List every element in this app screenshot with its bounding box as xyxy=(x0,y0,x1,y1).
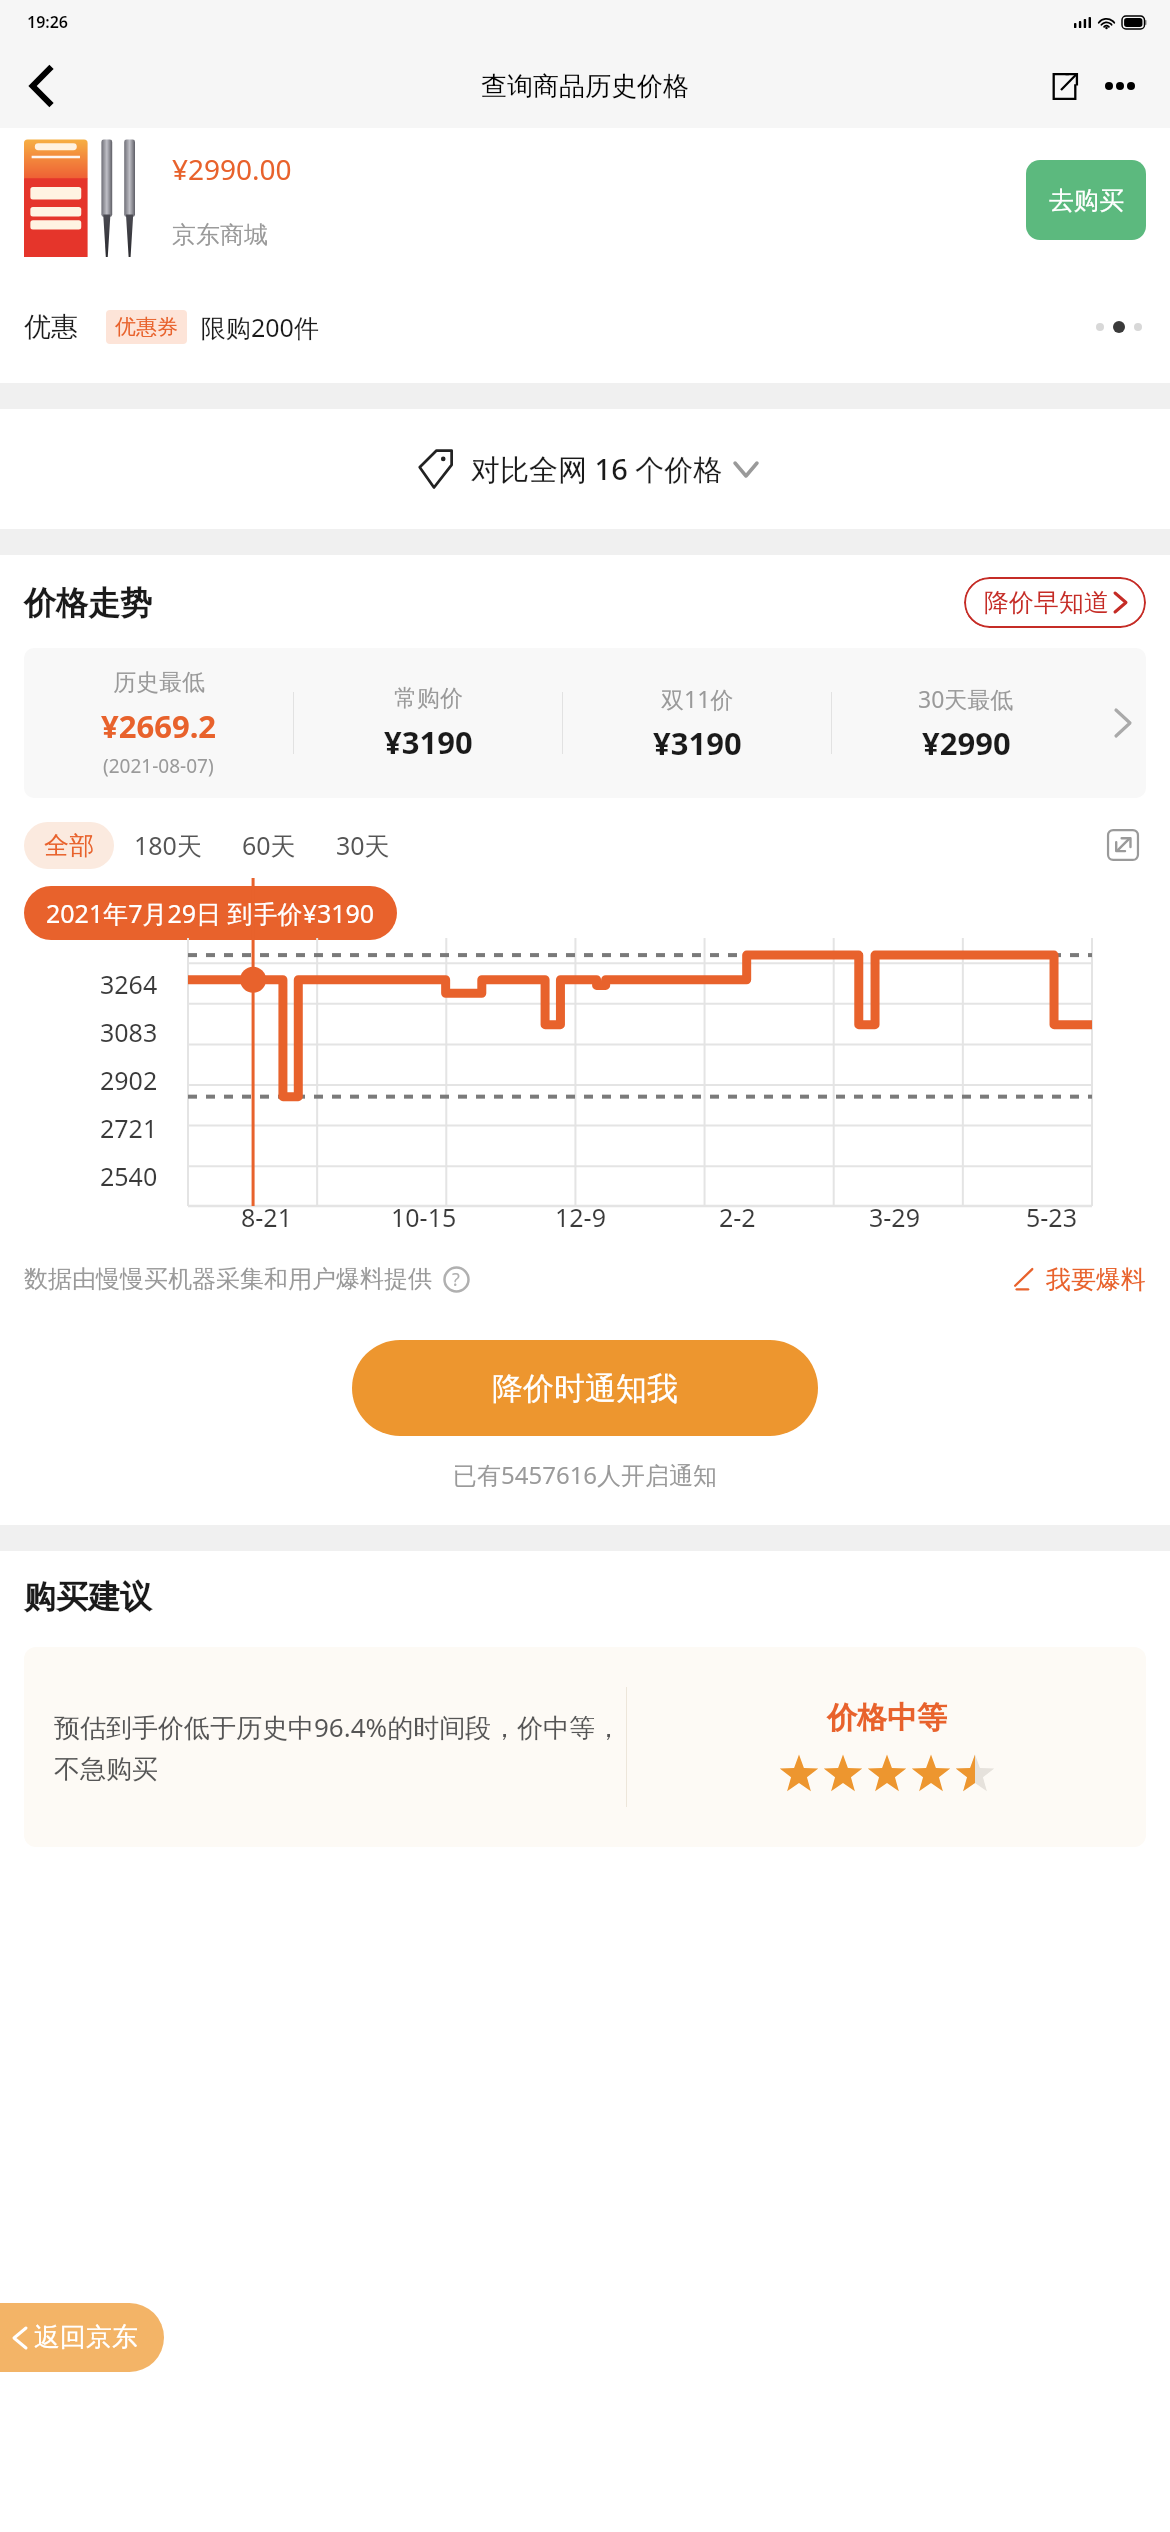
staticText: 查询商品历史价格 xyxy=(481,70,689,103)
button[interactable]: More options xyxy=(1094,60,1146,112)
button[interactable]: 全部 xyxy=(24,822,114,869)
staticText: 返回京东 xyxy=(34,2321,138,2354)
staticText: 30天最低 xyxy=(918,683,1014,714)
staticText: 2021年7月29日 到手价¥3190 xyxy=(46,896,375,930)
staticText: 2721 xyxy=(100,1111,158,1145)
staticText: 常购价 xyxy=(394,684,463,713)
staticText: 去购买 xyxy=(1049,185,1124,216)
staticText: ¥3190 xyxy=(384,721,473,763)
staticText: 180天 xyxy=(134,828,202,862)
staticText: 5-23 xyxy=(1026,1200,1077,1234)
button[interactable]: Fullscreen chart xyxy=(1100,822,1146,868)
button[interactable]: 降价早知道 xyxy=(964,577,1146,628)
staticText: 对比全网 16 个价格 xyxy=(471,449,723,489)
staticText: 3-29 xyxy=(869,1200,920,1234)
staticText: 3264 xyxy=(100,967,158,1001)
staticText: 10-15 xyxy=(391,1200,457,1234)
button[interactable]: ¥2990.00 xyxy=(0,128,1170,271)
staticText: 预估到手价低于历史中96.4%的时间段，价中等，不急购买 xyxy=(54,1709,626,1786)
staticText: 30天 xyxy=(336,828,390,862)
button[interactable]: 对比全网 16 个价格 xyxy=(0,409,1170,529)
button[interactable]: 返回京东 xyxy=(0,2303,164,2372)
staticText: 12-9 xyxy=(555,1200,606,1234)
staticText: 我要爆料 xyxy=(1046,1264,1146,1295)
staticText: 降价早知道 xyxy=(984,587,1109,618)
staticText: 8-21 xyxy=(241,1200,292,1234)
button[interactable]: 降价时通知我 xyxy=(352,1340,818,1436)
staticText: 优惠券 xyxy=(115,314,178,340)
staticText: 19:26 xyxy=(27,11,69,33)
staticText: 历史最低 xyxy=(113,668,205,697)
button[interactable]: 去购买 xyxy=(1026,160,1146,240)
button[interactable]: 60天 xyxy=(222,820,316,870)
staticText: (2021-08-07) xyxy=(103,753,214,779)
button[interactable]: 我要爆料 xyxy=(1012,1264,1146,1295)
button[interactable]: Info xyxy=(442,1265,470,1293)
staticText: 3083 xyxy=(100,1015,158,1049)
staticText: 价格中等 xyxy=(827,1699,947,1737)
staticText: 双11价 xyxy=(661,683,734,714)
button[interactable]: 历史最低 xyxy=(24,648,1146,798)
staticText: ¥2990 xyxy=(922,722,1011,764)
staticText: 60天 xyxy=(242,828,296,862)
staticText: 限购200件 xyxy=(201,310,319,344)
staticText: 价格走势 xyxy=(24,583,152,623)
staticText: ¥2990.00 xyxy=(172,150,292,188)
staticText: 京东商城 xyxy=(172,220,268,250)
staticText: 购买建议 xyxy=(24,1577,152,1617)
button[interactable]: 180天 xyxy=(114,820,222,870)
staticText: ? xyxy=(452,1267,460,1292)
button[interactable]: Back xyxy=(10,55,72,117)
button[interactable]: 30天 xyxy=(316,820,410,870)
staticText: 降价时通知我 xyxy=(492,1369,678,1408)
button[interactable]: Share xyxy=(1038,60,1090,112)
staticText: ¥2669.2 xyxy=(101,705,217,747)
staticText: ¥3190 xyxy=(653,722,742,764)
staticText: 数据由慢慢买机器采集和用户爆料提供 xyxy=(24,1264,432,1294)
staticText: 已有5457616人开启通知 xyxy=(453,1458,718,1491)
button[interactable]: 优惠 xyxy=(0,271,1170,383)
staticText: 2902 xyxy=(100,1063,158,1097)
staticText: 全部 xyxy=(44,830,94,861)
staticText: 2-2 xyxy=(719,1200,756,1234)
staticText: 优惠 xyxy=(24,310,78,344)
staticText: 2540 xyxy=(100,1159,158,1193)
